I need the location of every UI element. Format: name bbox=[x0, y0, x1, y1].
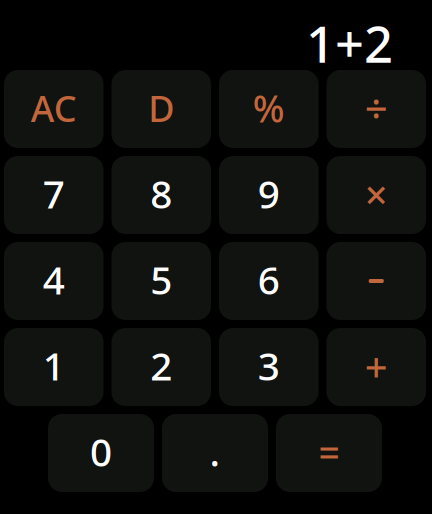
staticText: 0 bbox=[90, 426, 112, 477]
button[interactable]: Equals bbox=[276, 414, 382, 492]
staticText: 2 bbox=[150, 340, 172, 391]
staticText: . bbox=[209, 426, 220, 477]
button[interactable]: Minus bbox=[326, 242, 426, 320]
staticText: 4 bbox=[43, 254, 65, 305]
button[interactable]: 3 bbox=[219, 328, 318, 406]
staticText: 1 bbox=[43, 340, 65, 391]
staticText: 7 bbox=[43, 168, 65, 219]
button[interactable]: 0 bbox=[48, 414, 154, 492]
staticText: 1+2 bbox=[306, 9, 393, 77]
button[interactable]: Decimal point bbox=[162, 414, 268, 492]
button[interactable]: 5 bbox=[111, 242, 211, 320]
staticText: 3 bbox=[258, 340, 280, 391]
staticText: 6 bbox=[258, 254, 280, 305]
button[interactable]: 2 bbox=[111, 328, 211, 406]
button[interactable]: Divide bbox=[326, 70, 426, 148]
staticText: × bbox=[365, 167, 388, 220]
button[interactable]: 9 bbox=[219, 156, 318, 234]
button[interactable]: Percent bbox=[219, 70, 318, 148]
button[interactable]: All clear bbox=[4, 70, 103, 148]
button[interactable]: 4 bbox=[4, 242, 103, 320]
button[interactable]: Delete bbox=[111, 70, 211, 148]
button[interactable]: Plus bbox=[326, 328, 426, 406]
button[interactable]: 1 bbox=[4, 328, 103, 406]
staticText: 5 bbox=[150, 254, 172, 305]
staticText: % bbox=[253, 83, 285, 133]
staticText: D bbox=[148, 84, 174, 132]
button[interactable]: 6 bbox=[219, 242, 318, 320]
button[interactable]: 8 bbox=[111, 156, 211, 234]
staticText: ÷ bbox=[365, 81, 388, 134]
staticText: 8 bbox=[150, 168, 172, 219]
staticText: 9 bbox=[258, 168, 280, 219]
button[interactable]: 7 bbox=[4, 156, 103, 234]
staticText: AC bbox=[31, 84, 77, 132]
staticText: + bbox=[365, 339, 388, 392]
staticText: = bbox=[318, 427, 339, 477]
button[interactable]: Multiply bbox=[326, 156, 426, 234]
